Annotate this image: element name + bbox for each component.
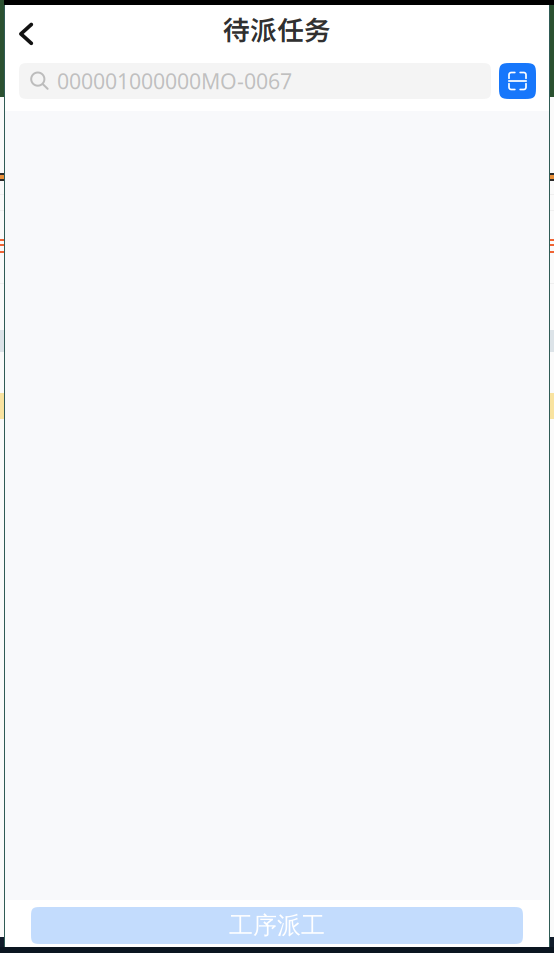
button[interactable]: 工序派工 xyxy=(31,907,523,944)
button[interactable]: Scan barcode xyxy=(499,63,536,99)
staticText: 待派任务 xyxy=(223,9,331,48)
staticText: 000001000000MO-0067 xyxy=(57,67,292,95)
button[interactable]: Back xyxy=(4,12,56,56)
staticText: 工序派工 xyxy=(229,911,325,940)
